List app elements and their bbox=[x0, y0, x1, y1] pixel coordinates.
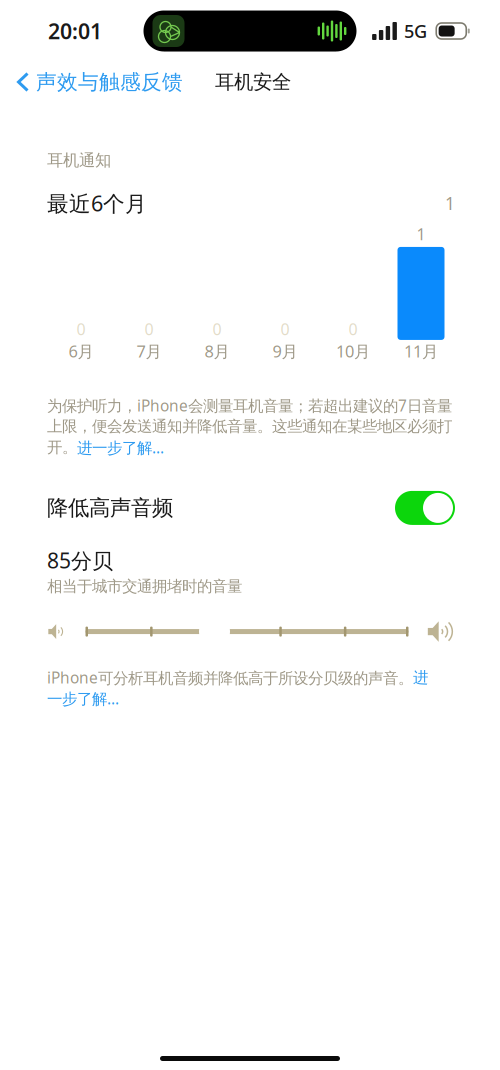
staticText: 7月 bbox=[136, 340, 161, 368]
button[interactable]: 声效与触感反馈 bbox=[0, 64, 183, 100]
staticText: 0 bbox=[144, 318, 153, 340]
staticText: 0 bbox=[76, 318, 85, 340]
button[interactable]: 降低高声音频 bbox=[395, 491, 455, 525]
staticText: 8月 bbox=[204, 340, 229, 368]
staticText: 开。 bbox=[47, 438, 77, 457]
staticText: 进 bbox=[413, 668, 428, 687]
staticText: 声效与触感反馈 bbox=[36, 69, 183, 95]
staticText: 耳机通知 bbox=[47, 150, 111, 170]
staticText: 6月 bbox=[68, 340, 93, 368]
staticText: 20:01 bbox=[48, 16, 102, 46]
staticText: 相当于城市交通拥堵时的音量 bbox=[47, 577, 242, 596]
staticText: 0 bbox=[280, 318, 289, 340]
staticText: 85分贝 bbox=[47, 546, 113, 575]
staticText: 最近6个月 bbox=[47, 188, 147, 218]
staticText: 耳机安全 bbox=[215, 70, 291, 94]
staticText: 1 bbox=[416, 223, 425, 245]
staticText: 一步了解... bbox=[47, 688, 119, 709]
staticText: 0 bbox=[212, 318, 221, 340]
staticText: 1 bbox=[445, 191, 455, 215]
staticText: 为保护听力，iPhone会测量耳机音量；若超出建议的7日音量 bbox=[47, 395, 452, 416]
staticText: 9月 bbox=[272, 340, 297, 368]
staticText: 上限，便会发送通知并降低音量。这些通知在某些地区必须打 bbox=[47, 417, 452, 436]
staticText: 5G bbox=[404, 19, 427, 43]
staticText: 降低高声音频 bbox=[47, 494, 173, 521]
staticText: iPhone可分析耳机音频并降低高于所设分贝级的声音。 bbox=[47, 667, 413, 688]
staticText: 11月 bbox=[404, 340, 438, 368]
staticText: 10月 bbox=[336, 340, 370, 368]
staticText: 0 bbox=[348, 318, 357, 340]
staticText: 进一步了解... bbox=[77, 437, 164, 458]
